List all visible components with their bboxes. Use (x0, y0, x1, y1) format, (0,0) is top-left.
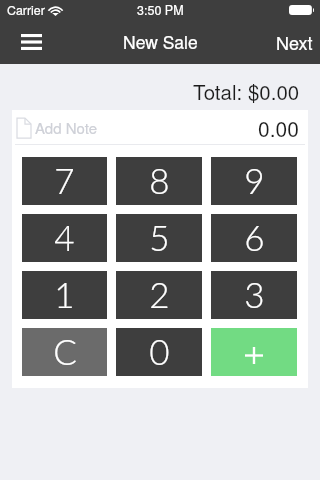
staticText: 0 (149, 330, 170, 372)
staticText: Total: $0.00 (193, 76, 300, 105)
staticText: 2 (149, 273, 170, 315)
button[interactable]: 3 (211, 271, 297, 319)
staticText: 8 (149, 159, 170, 201)
button[interactable]: 1 (22, 271, 107, 319)
staticText: 1 (54, 273, 75, 315)
staticText: 6 (244, 216, 265, 258)
staticText: New Sale (123, 29, 198, 54)
button[interactable]: Menu (0, 20, 62, 63)
staticText: Add Note (35, 117, 98, 138)
button[interactable]: 6 (211, 214, 297, 262)
button[interactable]: 4 (22, 214, 107, 262)
button[interactable]: Next (262, 20, 320, 63)
button[interactable]: 0 (116, 328, 202, 376)
button[interactable]: 8 (116, 157, 202, 205)
staticText: 3:50 PM (137, 1, 184, 19)
staticText: C (53, 330, 77, 372)
staticText: Carrier (7, 1, 45, 19)
button[interactable]: 7 (22, 157, 107, 205)
staticText: 9 (244, 159, 265, 201)
button[interactable]: 9 (211, 157, 297, 205)
staticText: Next (276, 29, 313, 55)
button[interactable]: 2 (116, 271, 202, 319)
button[interactable] (211, 328, 297, 376)
staticText: 7 (54, 159, 75, 201)
button[interactable]: Add Note (12, 110, 308, 145)
staticText: 0.00 (258, 113, 299, 143)
staticText: 5 (149, 216, 170, 258)
staticText: 4 (54, 216, 75, 258)
staticText: 3 (244, 273, 265, 315)
button[interactable]: 5 (116, 214, 202, 262)
button[interactable]: C (22, 328, 107, 376)
